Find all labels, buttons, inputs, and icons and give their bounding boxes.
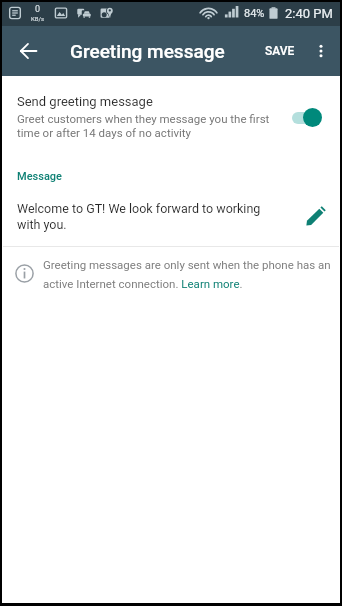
button[interactable]: SAVE bbox=[256, 26, 304, 76]
other: Send greeting message toggle bbox=[292, 108, 322, 127]
button[interactable]: Message bbox=[0, 156, 342, 246]
staticText: 2:40 PM bbox=[285, 6, 333, 21]
staticText: 84% bbox=[244, 7, 265, 20]
button[interactable]: More options bbox=[304, 26, 338, 76]
staticText: Message bbox=[17, 170, 62, 183]
button[interactable]: Edit message bbox=[300, 202, 330, 232]
staticText: SAVE bbox=[265, 44, 295, 58]
staticText: Greeting message bbox=[70, 40, 225, 62]
button[interactable]: Navigate up bbox=[0, 26, 56, 76]
staticText: 0 bbox=[35, 4, 41, 15]
button[interactable]: Send greeting message bbox=[0, 78, 342, 156]
staticText: Welcome to GT! We look forward to workin… bbox=[17, 201, 281, 232]
staticText: Greeting messages are only sent when the… bbox=[43, 258, 337, 290]
staticText: Greet customers when they message you th… bbox=[17, 112, 284, 140]
staticText: Send greeting message bbox=[17, 94, 153, 109]
staticText: KB/s bbox=[31, 15, 45, 22]
